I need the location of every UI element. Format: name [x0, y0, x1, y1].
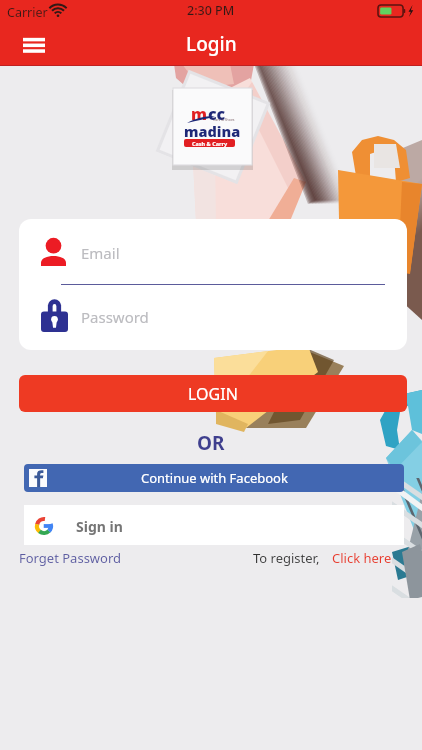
button[interactable]: Email [19, 219, 407, 285]
staticText: Cash & Carry [192, 140, 228, 147]
staticText: Click here [332, 549, 392, 567]
staticText: cc [208, 103, 226, 125]
staticText: Cars & Shoes [213, 117, 235, 122]
staticText: m [191, 103, 208, 125]
staticText: Email [81, 243, 120, 263]
button[interactable]: Continue with Facebook [24, 464, 404, 492]
staticText: Continue with Facebook [141, 469, 288, 487]
staticText: 2:30 PM [187, 2, 235, 19]
staticText: Forget Password [19, 549, 122, 567]
staticText: Password [81, 307, 149, 327]
button[interactable]: Click here [332, 549, 392, 567]
staticText: Carrier [7, 4, 48, 21]
button[interactable]: Forget Password [19, 549, 122, 567]
button[interactable]: Password [19, 285, 407, 350]
staticText: OR [197, 430, 225, 456]
button[interactable]: LOGIN [19, 375, 407, 412]
staticText: Sign in [76, 517, 123, 536]
staticText: LOGIN [188, 383, 238, 405]
button[interactable]: Menu [14, 24, 54, 64]
staticText: Login [186, 31, 237, 57]
staticText: madina [184, 121, 241, 141]
button[interactable]: Sign in [24, 505, 404, 545]
staticText: To register, [253, 549, 320, 567]
